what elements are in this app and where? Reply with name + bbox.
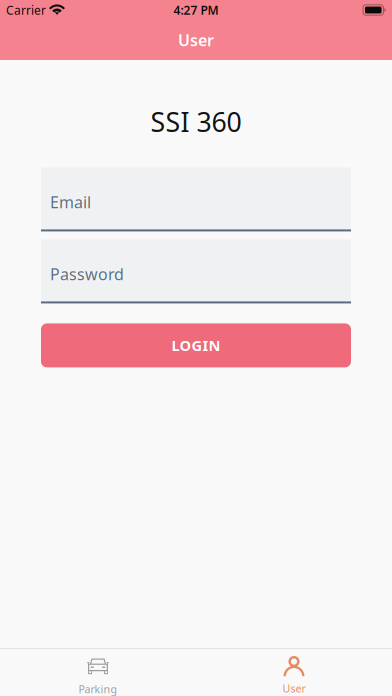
staticText: User (178, 29, 214, 51)
staticText: LOGIN (171, 336, 220, 355)
button[interactable]: Parking (0, 649, 196, 696)
staticText: SSI 360 (150, 104, 241, 139)
staticText: Carrier (6, 2, 46, 18)
staticText: User (282, 681, 305, 695)
button[interactable]: LOGIN (41, 323, 351, 367)
staticText: 4:27 PM (173, 2, 218, 18)
button[interactable]: Email (41, 167, 351, 231)
button[interactable]: User (196, 649, 392, 696)
staticText: Password (50, 263, 124, 285)
button[interactable]: Password (41, 239, 351, 303)
staticText: Parking (78, 682, 117, 696)
staticText: Email (50, 191, 91, 213)
